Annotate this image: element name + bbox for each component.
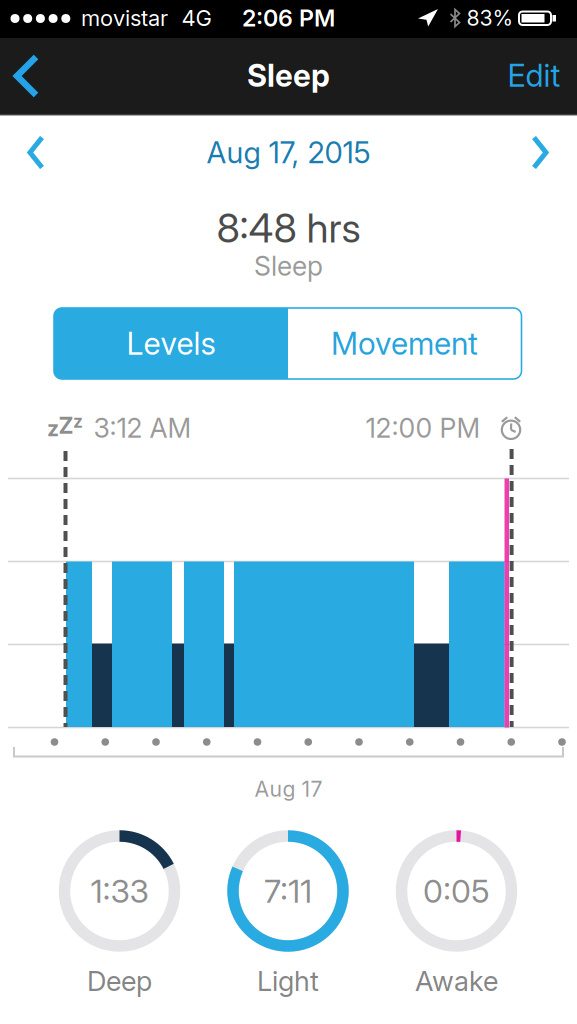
- staticText: 7:11: [264, 872, 312, 910]
- button[interactable]: Next day: [528, 134, 552, 170]
- button[interactable]: Levels: [54, 308, 288, 379]
- staticText: Aug 17: [254, 776, 322, 802]
- staticText: movistar: [81, 5, 168, 31]
- button[interactable]: Edit: [494, 45, 574, 105]
- staticText: Movement: [331, 325, 478, 362]
- staticText: 2:06 PM: [242, 4, 335, 32]
- staticText: Aug 17, 2015: [206, 135, 370, 170]
- button[interactable]: Previous day: [24, 134, 48, 170]
- staticText: 0:05: [423, 872, 490, 910]
- staticText: Sleep: [254, 250, 323, 282]
- staticText: 4G: [181, 5, 211, 31]
- button[interactable]: Movement: [289, 310, 520, 377]
- staticText: z: [73, 411, 83, 432]
- staticText: z: [47, 416, 59, 441]
- staticText: Deep: [87, 964, 152, 998]
- staticText: Edit: [507, 57, 560, 94]
- staticText: Light: [257, 964, 319, 998]
- staticText: 12:00 PM: [365, 412, 480, 444]
- staticText: 3:12 AM: [93, 412, 191, 444]
- staticText: 1:33: [90, 872, 148, 910]
- staticText: Z: [58, 412, 73, 439]
- staticText: 8:48 hrs: [216, 204, 360, 252]
- button[interactable]: Back: [9, 52, 43, 100]
- staticText: Awake: [415, 964, 498, 998]
- staticText: Sleep: [247, 57, 330, 94]
- staticText: Levels: [126, 325, 215, 362]
- staticText: 83%: [466, 5, 513, 31]
